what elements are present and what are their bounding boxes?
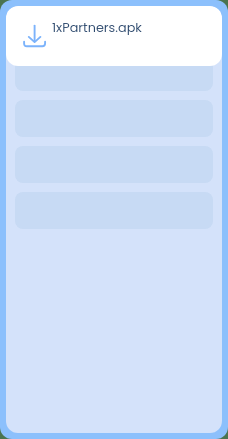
button[interactable]: Download <box>6 6 222 66</box>
other: Download <box>22 24 48 48</box>
staticText: 1xPartners.apk <box>52 19 142 37</box>
button[interactable] <box>15 54 213 91</box>
